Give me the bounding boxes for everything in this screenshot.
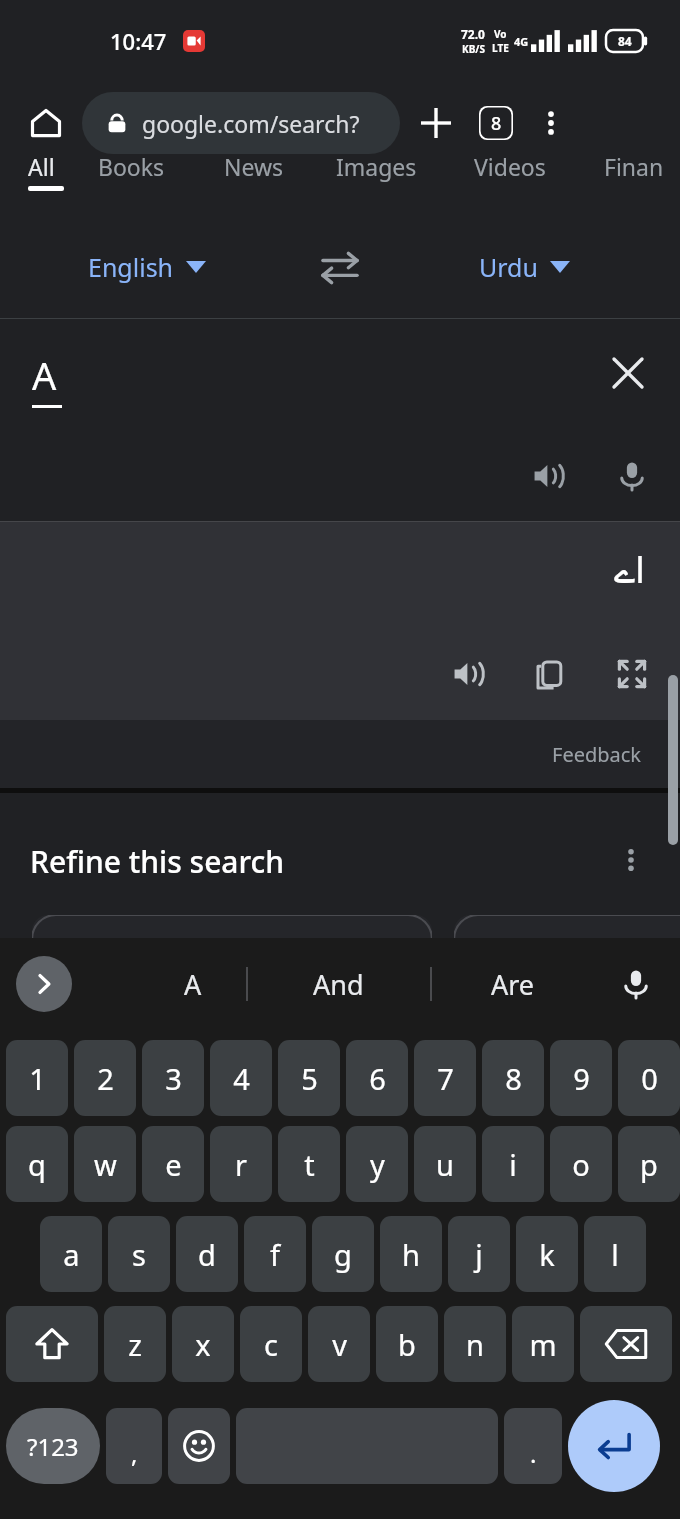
button[interactable]: m <box>512 1306 574 1382</box>
button[interactable]: i <box>482 1126 544 1202</box>
button[interactable]: f <box>244 1216 306 1292</box>
button[interactable]: 6 <box>346 1040 408 1116</box>
button[interactable]: Tabs: 8 open <box>470 97 522 149</box>
button[interactable]: s <box>108 1216 170 1292</box>
button[interactable]: l <box>584 1216 646 1292</box>
button[interactable]: Listen to translation <box>440 646 496 702</box>
staticText: English <box>88 250 174 284</box>
button[interactable]: e <box>142 1126 204 1202</box>
staticText: A <box>184 966 202 1003</box>
button[interactable]: More options <box>606 835 656 885</box>
button[interactable]: Listen <box>520 448 576 504</box>
staticText: 8 <box>505 1059 522 1098</box>
button[interactable]: r <box>210 1126 272 1202</box>
button[interactable]: And <box>283 966 393 1003</box>
staticText: 2 <box>97 1059 114 1098</box>
button[interactable]: Copy translation <box>522 646 578 702</box>
button[interactable]: 2 <box>74 1040 136 1116</box>
staticText: 72.0 <box>461 26 485 42</box>
button[interactable]: Expand suggestions <box>16 956 72 1012</box>
staticText: All <box>28 151 55 182</box>
button[interactable]: Google Translate English to Urdu <box>32 915 432 1025</box>
button[interactable]: Are <box>458 966 568 1003</box>
staticText: d <box>198 1235 216 1274</box>
staticText: 9 <box>573 1059 590 1098</box>
staticText: w <box>94 1145 117 1184</box>
staticText: i <box>509 1145 517 1184</box>
button[interactable]: ?123 <box>6 1408 100 1484</box>
button[interactable]: A <box>138 966 248 1003</box>
staticText: 8 <box>491 111 502 136</box>
button[interactable]: Speak <box>604 448 660 504</box>
button[interactable]: Shift <box>6 1306 98 1382</box>
button[interactable]: 1 <box>6 1040 68 1116</box>
button[interactable]: Translate English to <box>454 915 680 1025</box>
button[interactable]: Emoji <box>168 1408 230 1484</box>
button[interactable]: y <box>346 1126 408 1202</box>
button[interactable]: More options <box>528 100 574 146</box>
button[interactable]: g <box>312 1216 374 1292</box>
button[interactable]: Backspace <box>580 1306 672 1382</box>
staticText: p <box>640 1145 658 1184</box>
staticText: z <box>128 1325 142 1364</box>
staticText: 4 <box>233 1059 250 1098</box>
button[interactable]: p <box>618 1126 680 1202</box>
button[interactable]: 7 <box>414 1040 476 1116</box>
staticText: c <box>264 1325 278 1364</box>
button[interactable]: t <box>278 1126 340 1202</box>
button[interactable]: google.com/search? <box>82 92 400 154</box>
button[interactable]: k <box>516 1216 578 1292</box>
button[interactable]: j <box>448 1216 510 1292</box>
button[interactable]: n <box>444 1306 506 1382</box>
staticText: 1 <box>29 1059 46 1098</box>
staticText: v <box>332 1325 347 1364</box>
staticText: j <box>475 1235 483 1274</box>
button[interactable]: Swap languages <box>312 239 368 295</box>
button[interactable]: Clear <box>602 347 654 399</box>
staticText: Books <box>98 151 165 182</box>
button[interactable]: Urdu <box>479 250 570 284</box>
button[interactable]: 5 <box>278 1040 340 1116</box>
button[interactable]: x <box>172 1306 234 1382</box>
button[interactable]: Home <box>22 99 70 147</box>
staticText: Videos <box>474 151 546 182</box>
staticText: s <box>132 1235 146 1274</box>
button[interactable]: d <box>176 1216 238 1292</box>
staticText: . <box>530 1437 537 1470</box>
staticText: 10:47 <box>110 26 167 56</box>
staticText: r <box>235 1145 247 1184</box>
button[interactable]: a <box>40 1216 102 1292</box>
button[interactable]: Space <box>236 1408 498 1484</box>
button[interactable]: o <box>550 1126 612 1202</box>
button[interactable]: q <box>6 1126 68 1202</box>
button[interactable]: z <box>104 1306 166 1382</box>
staticText: t <box>304 1145 315 1184</box>
button[interactable]: w <box>74 1126 136 1202</box>
button[interactable]: 4 <box>210 1040 272 1116</box>
button[interactable]: New tab <box>410 97 462 149</box>
staticText: 4G <box>514 34 529 49</box>
staticText: 84 <box>618 33 632 49</box>
button[interactable]: , <box>106 1408 162 1484</box>
staticText: News <box>224 151 284 182</box>
staticText: h <box>402 1235 420 1274</box>
button[interactable]: b <box>376 1306 438 1382</box>
button[interactable]: u <box>414 1126 476 1202</box>
button[interactable]: c <box>240 1306 302 1382</box>
button[interactable]: v <box>308 1306 370 1382</box>
button[interactable]: Fullscreen <box>604 646 660 702</box>
button[interactable]: English <box>88 250 206 284</box>
button[interactable]: Feedback <box>552 741 642 768</box>
button[interactable]: 3 <box>142 1040 204 1116</box>
staticText: KB/S <box>462 42 485 56</box>
button[interactable]: 8 <box>482 1040 544 1116</box>
button[interactable]: 9 <box>550 1040 612 1116</box>
staticText: Vo <box>494 27 507 41</box>
button[interactable]: Voice input <box>608 956 664 1012</box>
button[interactable]: h <box>380 1216 442 1292</box>
button[interactable]: 0 <box>618 1040 680 1116</box>
button[interactable]: . <box>504 1408 562 1484</box>
staticText: , <box>131 1437 138 1470</box>
button[interactable]: Enter <box>568 1400 660 1492</box>
